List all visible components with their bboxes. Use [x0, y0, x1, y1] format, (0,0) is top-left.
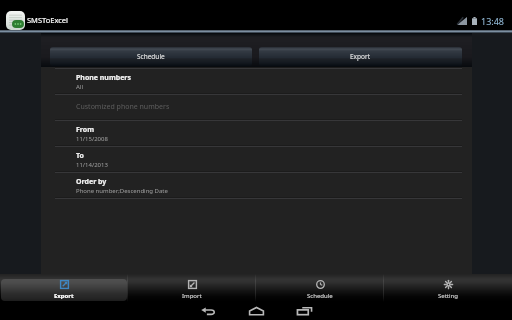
- staticText: Import: [182, 292, 202, 300]
- staticText: Phone numbers: [76, 73, 131, 83]
- staticText: Schedule: [307, 292, 333, 300]
- staticText: 13:48: [481, 15, 505, 27]
- button[interactable]: Back: [184, 302, 232, 320]
- staticText: 11/14/2013: [76, 161, 108, 169]
- staticText: All: [76, 83, 83, 91]
- button[interactable]: Setting: [385, 279, 511, 301]
- staticText: Export: [350, 52, 371, 61]
- staticText: Phone number;Descending Date: [76, 187, 168, 195]
- button[interactable]: Export: [1, 279, 127, 301]
- staticText: Export: [54, 292, 74, 300]
- staticText: Order by: [76, 177, 107, 187]
- staticText: 11/15/2008: [76, 135, 108, 143]
- button[interactable]: From: [41, 121, 472, 145]
- staticText: Setting: [438, 292, 458, 300]
- staticText: Schedule: [137, 52, 165, 61]
- button[interactable]: Phone numbers: [41, 69, 472, 93]
- button[interactable]: Schedule: [50, 47, 252, 66]
- button[interactable]: Schedule: [257, 279, 383, 301]
- staticText: From: [76, 125, 95, 135]
- button[interactable]: Home: [232, 302, 280, 320]
- staticText: To: [76, 151, 84, 161]
- button[interactable]: To: [41, 147, 472, 171]
- staticText: Customized phone numbers: [76, 102, 170, 112]
- button[interactable]: Export: [259, 47, 462, 66]
- button[interactable]: Recent apps: [280, 302, 328, 320]
- button[interactable]: Order by: [41, 173, 472, 197]
- button[interactable]: Import: [129, 279, 255, 301]
- button[interactable]: Customized phone numbers: [41, 95, 472, 119]
- staticText: SMSToExcel: [27, 15, 68, 25]
